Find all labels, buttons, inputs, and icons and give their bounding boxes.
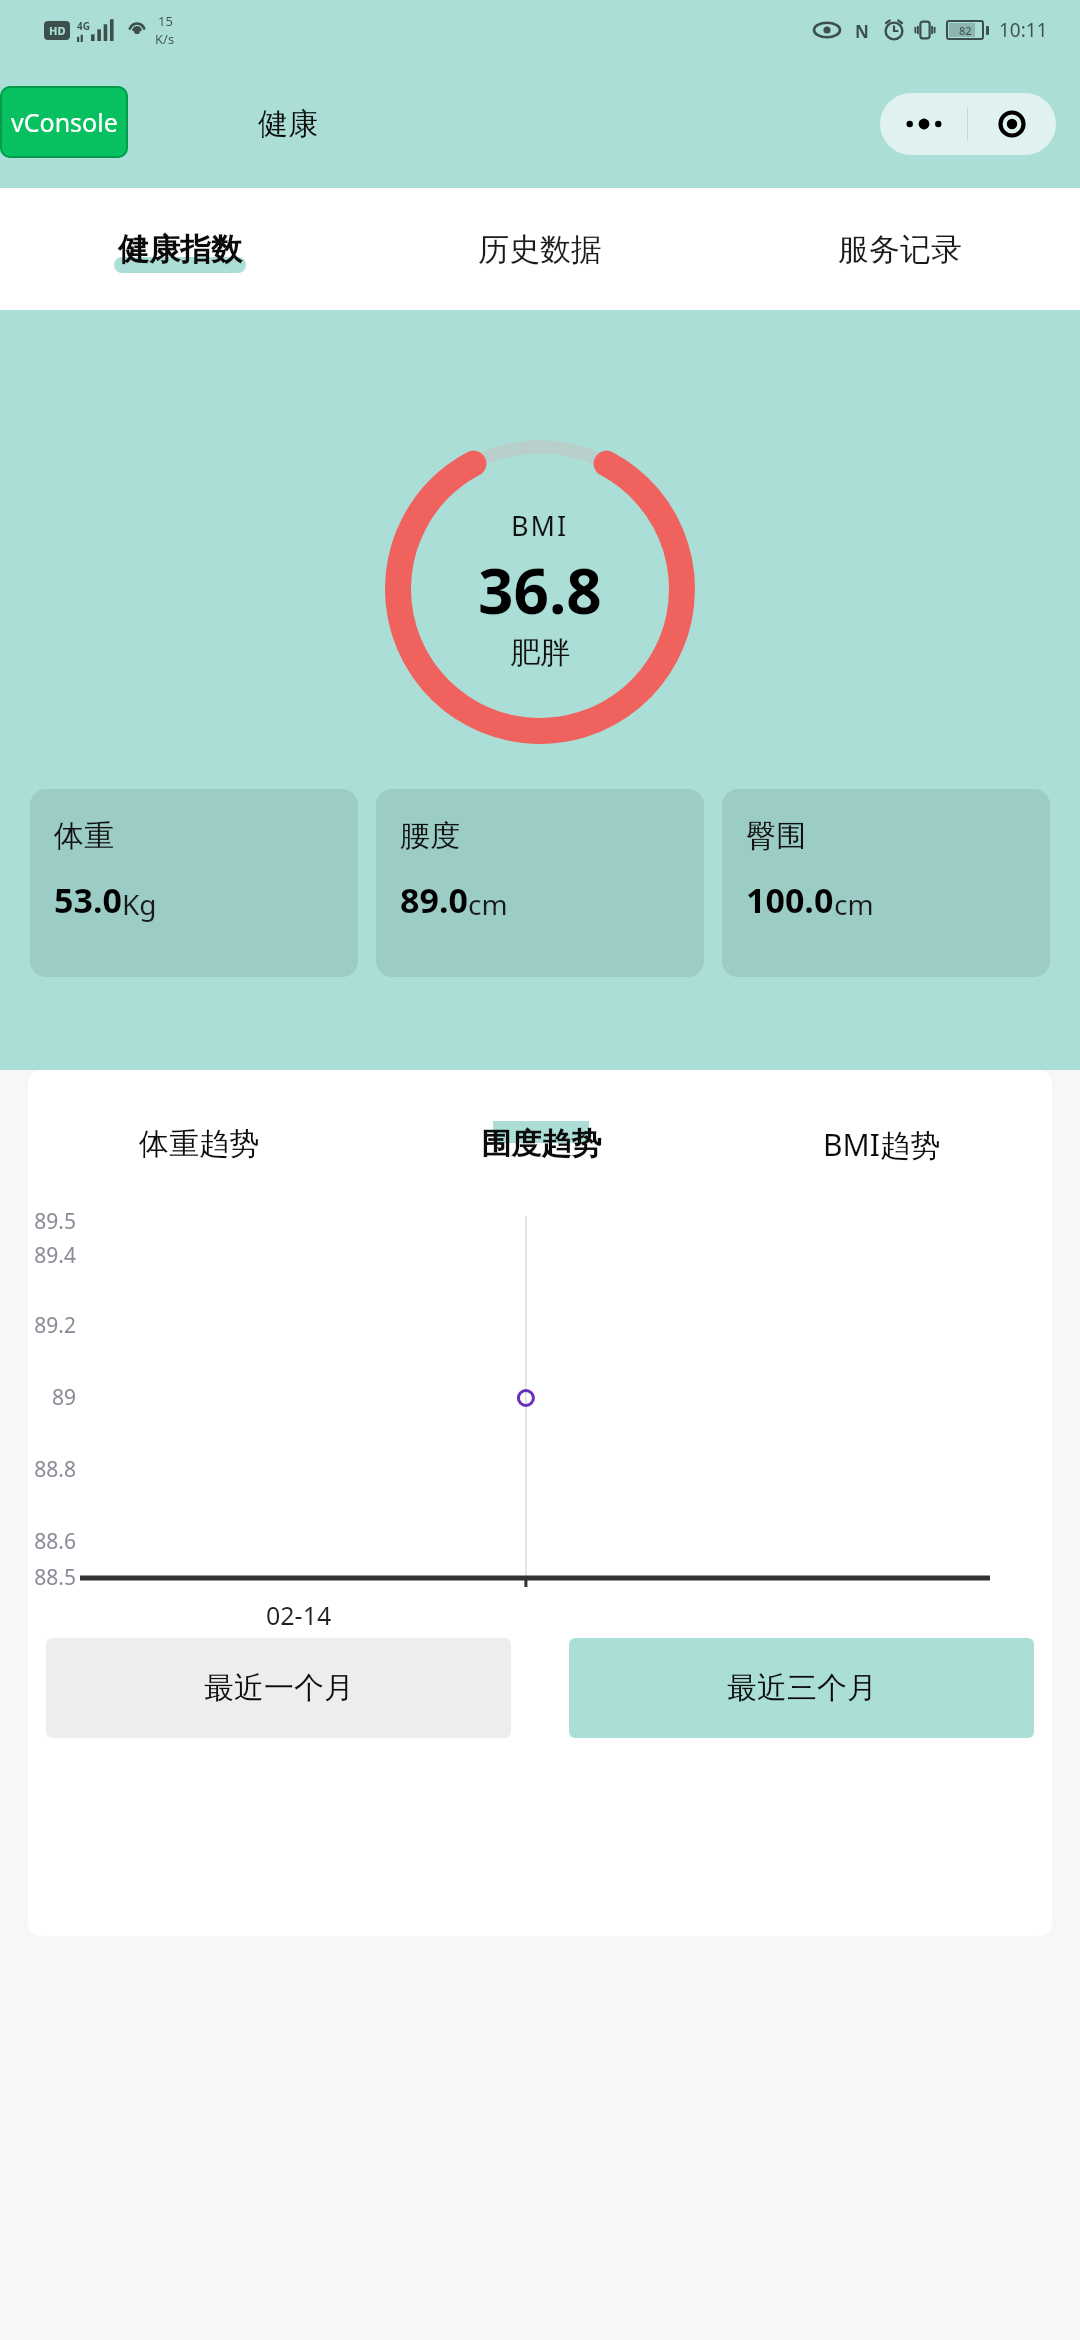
staticText: HD <box>49 23 66 38</box>
staticText: 89.4 <box>28 1241 76 1270</box>
staticText: 89.5 <box>28 1207 76 1236</box>
button[interactable]: 臀围 <box>722 789 1050 977</box>
staticText: 15 <box>158 12 173 30</box>
staticText: cm <box>468 885 508 923</box>
button[interactable]: More <box>880 116 967 132</box>
button[interactable]: BMI趋势 <box>711 1108 1052 1180</box>
staticText: 02-14 <box>266 1598 332 1632</box>
button[interactable]: Close <box>968 111 1056 137</box>
staticText: N <box>855 20 869 40</box>
staticText: 服务记录 <box>838 230 962 269</box>
button[interactable]: 服务记录 <box>720 188 1080 310</box>
staticText: 围度趋势 <box>481 1125 601 1163</box>
staticText: 腰度 <box>400 817 460 855</box>
staticText: 健康 <box>258 105 318 143</box>
staticText: 历史数据 <box>478 230 602 269</box>
button[interactable]: 健康指数 <box>0 188 360 310</box>
staticText: 88.5 <box>28 1563 76 1592</box>
staticText: 82 <box>959 23 972 37</box>
staticText: Kg <box>122 885 157 923</box>
button[interactable]: 最近三个月 <box>569 1638 1034 1738</box>
staticText: 健康指数 <box>118 230 242 269</box>
button[interactable]: vConsole <box>0 86 128 158</box>
staticText: 53.0 <box>54 877 122 923</box>
staticText: 89.0 <box>400 877 468 923</box>
staticText: 89 <box>28 1383 76 1412</box>
button[interactable]: 体重趋势 <box>28 1108 370 1180</box>
staticText: BMI <box>511 507 569 544</box>
button[interactable]: 体重 <box>30 789 358 977</box>
staticText: K/s <box>155 30 175 48</box>
staticText: 臀围 <box>746 817 806 855</box>
staticText: 89.2 <box>28 1311 76 1340</box>
staticText: 4G <box>77 19 90 33</box>
staticText: BMI趋势 <box>823 1124 940 1165</box>
staticText: 体重 <box>54 817 114 855</box>
button[interactable]: 围度趋势 <box>370 1108 711 1180</box>
staticText: 体重趋势 <box>139 1125 259 1163</box>
button[interactable]: 最近一个月 <box>46 1638 511 1738</box>
staticText: 最近一个月 <box>204 1669 354 1707</box>
staticText: cm <box>834 885 874 923</box>
staticText: 100.0 <box>746 877 834 923</box>
button[interactable]: 历史数据 <box>360 188 720 310</box>
staticText: 88.8 <box>28 1455 76 1484</box>
staticText: vConsole <box>11 105 118 139</box>
staticText: 88.6 <box>28 1527 76 1556</box>
staticText: 10:11 <box>999 17 1048 43</box>
button[interactable]: 腰度 <box>376 789 704 977</box>
staticText: 最近三个月 <box>727 1669 877 1707</box>
staticText: 36.8 <box>478 548 602 632</box>
staticText: 肥胖 <box>510 634 570 672</box>
